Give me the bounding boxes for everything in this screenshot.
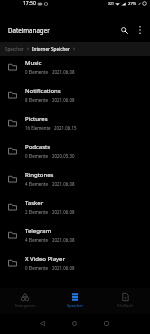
button[interactable]: Interner Speicher xyxy=(32,46,70,52)
staticText: 2 Elemente xyxy=(25,209,49,215)
staticText: Kategorien xyxy=(15,303,36,308)
staticText: Podcasts xyxy=(25,143,51,151)
staticText: 16 Elemente xyxy=(25,125,51,131)
button[interactable]: Home xyxy=(66,315,83,332)
button[interactable]: Search xyxy=(115,18,133,42)
staticText: Notifications xyxy=(25,87,61,95)
button[interactable]: Kategorien xyxy=(0,288,50,314)
staticText: 8 Elemente xyxy=(25,97,49,103)
staticText: 2021.06.08 xyxy=(52,97,75,103)
staticText: Dateimanager xyxy=(8,26,50,34)
button[interactable]: Recent apps xyxy=(98,315,115,332)
button[interactable]: Music xyxy=(0,56,150,81)
staticText: Music xyxy=(25,59,42,67)
staticText: Speicher xyxy=(67,303,84,308)
button[interactable]: FileDash xyxy=(100,288,150,314)
staticText: 27% xyxy=(128,1,137,7)
button[interactable]: Ringtones xyxy=(0,165,150,193)
staticText: Ringtones xyxy=(25,171,54,179)
staticText: X Video Player xyxy=(25,255,65,263)
button[interactable]: Notifications xyxy=(0,81,150,109)
staticText: 4 Elemente xyxy=(25,237,49,243)
staticText: Tasker xyxy=(25,199,44,207)
button[interactable]: Tasker xyxy=(0,193,150,221)
button[interactable]: More options xyxy=(133,18,147,42)
button[interactable]: Speicher xyxy=(5,46,24,52)
staticText: 2021.06.08 xyxy=(52,209,75,215)
button[interactable]: Podcasts xyxy=(0,137,150,165)
staticText: 2021.06.08 xyxy=(52,69,75,75)
staticText: 2020.05.30 xyxy=(52,153,75,159)
button[interactable]: Telegram xyxy=(0,221,150,249)
staticText: 0 Elemente xyxy=(25,265,49,271)
staticText: FileDash xyxy=(117,303,133,308)
staticText: 4 Elemente xyxy=(25,181,49,187)
staticText: 0 Elemente xyxy=(25,153,49,159)
staticText: 321 xyxy=(108,1,114,6)
button[interactable]: Speicher xyxy=(50,288,100,314)
staticText: Pictures xyxy=(25,115,48,123)
staticText: 17:50 xyxy=(23,0,36,7)
button[interactable]: Back xyxy=(34,315,51,332)
staticText: 2021.06.08 xyxy=(52,265,75,271)
staticText: 0 Elemente xyxy=(25,69,49,75)
staticText: 2021.06.15 xyxy=(54,125,77,131)
staticText: 2021.06.08 xyxy=(52,181,75,187)
button[interactable]: Pictures xyxy=(0,109,150,137)
staticText: 2021.06.08 xyxy=(52,237,75,243)
staticText: Telegram xyxy=(25,227,52,235)
button[interactable]: X Video Player xyxy=(0,249,150,277)
